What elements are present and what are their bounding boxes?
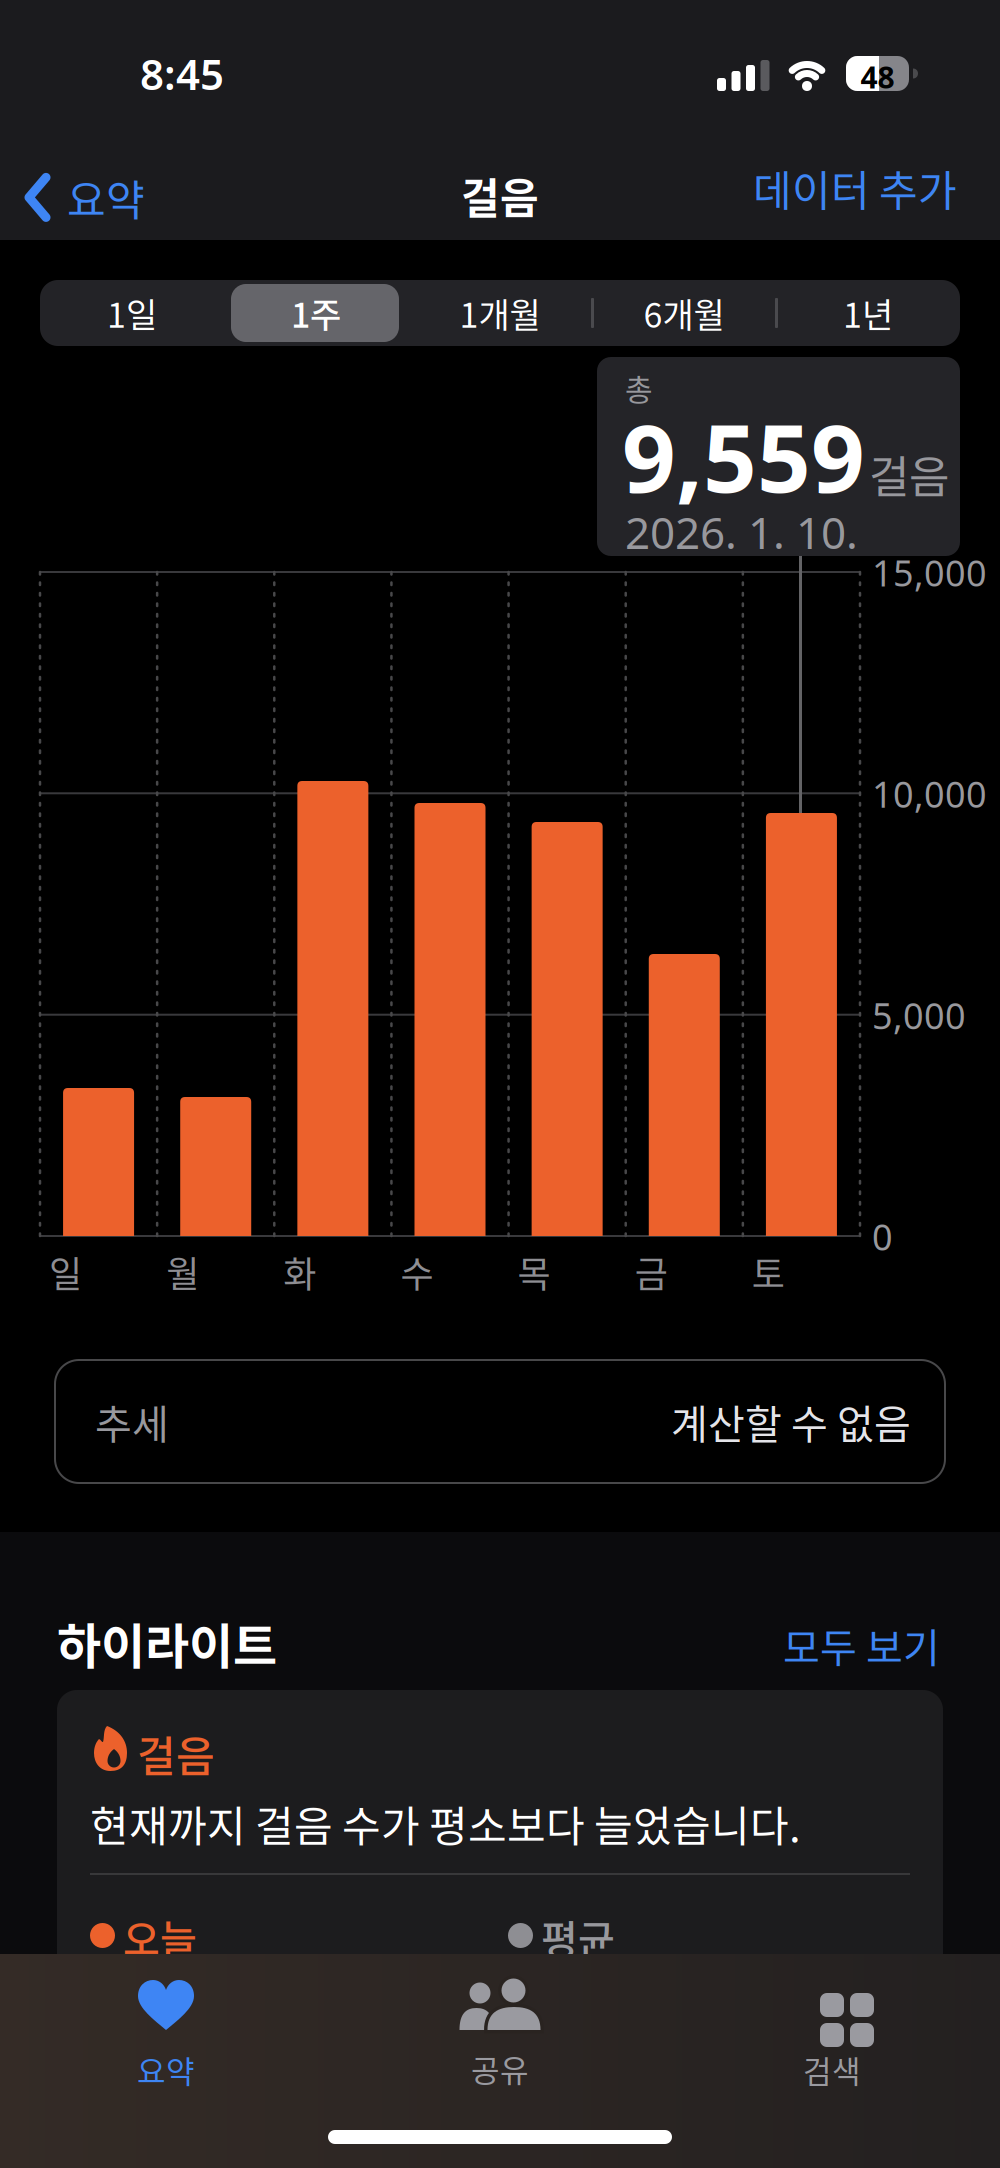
staticText: 추세 xyxy=(95,1392,169,1450)
staticText: 토 xyxy=(752,1246,785,1298)
staticText: 0 xyxy=(872,1212,893,1261)
staticText: 일 xyxy=(49,1246,82,1298)
button[interactable]: 1년 xyxy=(776,280,960,346)
staticText: 걸음 xyxy=(137,1723,215,1784)
staticText: 오늘 xyxy=(123,1908,197,1966)
staticText: 요약 xyxy=(137,2047,195,2092)
staticText: 목 xyxy=(518,1246,551,1298)
staticText: 현재까지 걸음 수가 평소보다 늘었습니다. xyxy=(90,1793,801,1854)
staticText: 월 xyxy=(166,1246,199,1298)
button[interactable]: 검색 xyxy=(732,1978,932,2092)
staticText: 검색 xyxy=(803,2047,861,2092)
button[interactable]: 공유 xyxy=(400,1978,600,2091)
staticText: 계산할 수 없음 xyxy=(671,1392,911,1450)
staticText: 9,559 xyxy=(622,392,865,520)
staticText: 1개월 xyxy=(459,288,540,338)
staticText: 6개월 xyxy=(643,288,724,338)
staticText: 10,000 xyxy=(872,769,987,818)
button[interactable]: Back xyxy=(24,167,145,228)
staticText: 총 xyxy=(625,366,653,409)
staticText: 15,000 xyxy=(872,548,987,597)
staticText: 수 xyxy=(400,1246,433,1298)
staticText: 하이라이트 xyxy=(57,1608,277,1677)
staticText: 2026. 1. 10. xyxy=(625,502,858,562)
staticText: 모두 보기 xyxy=(783,1616,940,1674)
button[interactable]: 1주 xyxy=(224,280,408,346)
staticText: 걸음 xyxy=(461,165,539,226)
staticText: 평균 xyxy=(541,1908,615,1966)
button[interactable]: 걸음 xyxy=(57,1690,943,2168)
staticText: 화 xyxy=(283,1246,316,1298)
button[interactable]: 데이터 추가 xyxy=(753,158,957,218)
staticText: 1주 xyxy=(291,288,341,338)
staticText: 1일 xyxy=(107,288,157,338)
button[interactable]: 요약 xyxy=(66,1980,266,2092)
button[interactable]: 모두 보기 xyxy=(783,1616,940,1674)
staticText: 5,000 xyxy=(872,991,966,1040)
button[interactable]: 1개월 xyxy=(408,280,592,346)
staticText: 48 xyxy=(860,56,894,97)
staticText: 1년 xyxy=(843,288,893,338)
staticText: 요약 xyxy=(67,167,145,228)
button[interactable]: 6개월 xyxy=(592,280,776,346)
staticText: 공유 xyxy=(471,2046,529,2091)
button[interactable]: 추세 xyxy=(55,1360,945,1483)
staticText: 걸음 xyxy=(869,442,949,506)
button[interactable]: 1일 xyxy=(40,280,224,346)
staticText: 8:45 xyxy=(140,45,224,102)
staticText: 데이터 추가 xyxy=(753,158,957,218)
staticText: 금 xyxy=(635,1246,668,1298)
